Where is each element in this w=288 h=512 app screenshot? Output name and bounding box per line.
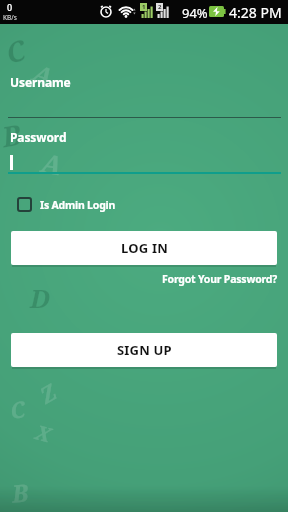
staticText: 4:28 PM <box>229 3 282 22</box>
staticText: 1 <box>142 3 146 11</box>
staticText: X <box>33 418 54 448</box>
staticText: C <box>1 30 30 72</box>
staticText: Username <box>10 74 71 90</box>
staticText: C <box>7 393 27 425</box>
staticText: 2 <box>158 3 162 11</box>
staticText: 0 <box>7 1 13 13</box>
staticText: Password <box>10 129 67 145</box>
staticText: A <box>39 144 65 182</box>
staticText: B <box>11 475 30 510</box>
staticText: D <box>30 280 50 315</box>
staticText: LOG IN <box>121 239 168 257</box>
button[interactable]: LOG IN <box>11 231 277 265</box>
staticText: Is Admin Login <box>40 198 116 212</box>
staticText: SIGN UP <box>117 341 172 359</box>
button[interactable]: SIGN UP <box>11 333 277 367</box>
button[interactable]: Forgot Your Password? <box>162 272 278 286</box>
staticText: KB/s <box>3 13 17 22</box>
staticText: 94% <box>182 4 208 22</box>
staticText: B <box>0 115 24 155</box>
staticText: A <box>29 56 58 93</box>
staticText: Z <box>33 376 61 410</box>
button[interactable]: Is Admin Login <box>17 197 116 212</box>
